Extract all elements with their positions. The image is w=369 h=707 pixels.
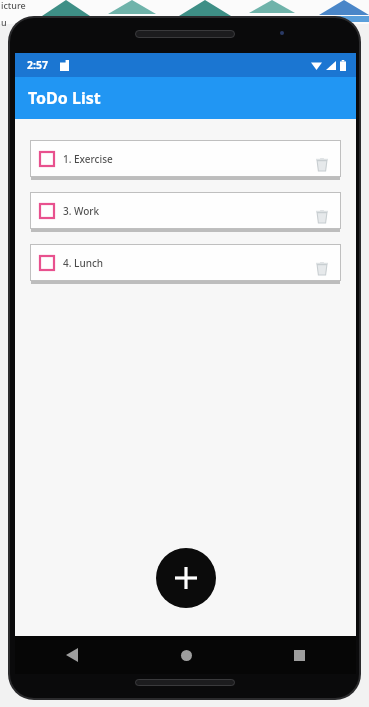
button[interactable]: Back xyxy=(55,638,89,672)
staticText: ToDo List xyxy=(28,87,101,109)
button[interactable]: Toggle 4. Lunch xyxy=(40,256,54,270)
button[interactable]: Add item xyxy=(156,548,216,608)
button[interactable]: Toggle 3. Work xyxy=(30,192,341,229)
staticText: icture xyxy=(1,0,26,11)
staticText: 3. Work xyxy=(63,204,100,218)
staticText: u xyxy=(1,16,7,28)
button[interactable]: Home xyxy=(169,638,203,672)
button[interactable]: Delete 3. Work xyxy=(313,207,331,225)
staticText: 1. Exercise xyxy=(63,152,113,166)
staticText: 2:57 xyxy=(27,58,48,72)
button[interactable]: Delete 4. Lunch xyxy=(313,259,331,277)
staticText: 4. Lunch xyxy=(63,256,104,270)
button[interactable]: Delete 1. Exercise xyxy=(313,155,331,173)
button[interactable]: Toggle 1. Exercise xyxy=(30,140,341,177)
button[interactable]: Toggle 1. Exercise xyxy=(40,152,54,166)
button[interactable]: Toggle 3. Work xyxy=(40,204,54,218)
button[interactable]: Recent apps xyxy=(282,638,316,672)
button[interactable]: Toggle 4. Lunch xyxy=(30,244,341,281)
